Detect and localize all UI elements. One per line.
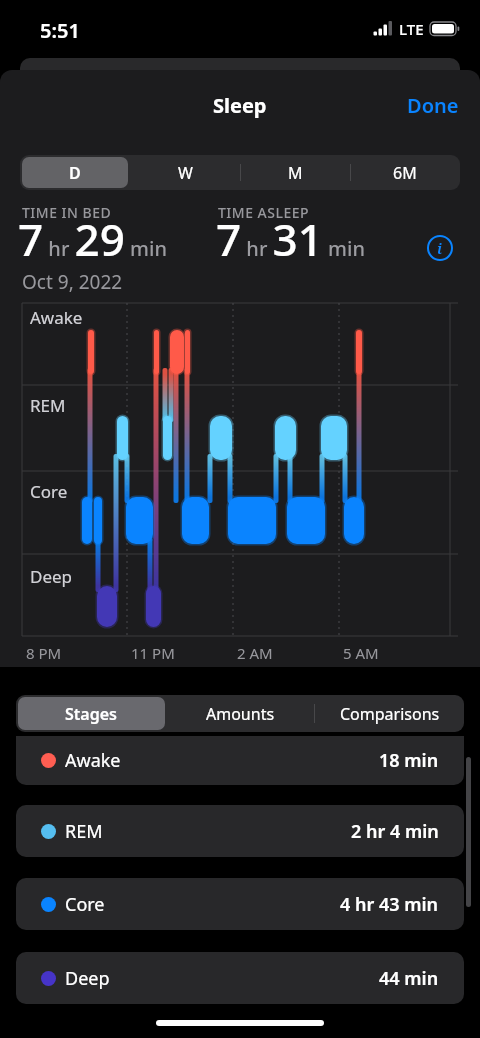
staticText: Awake xyxy=(65,748,121,773)
button[interactable]: Stages xyxy=(16,695,166,732)
button[interactable]: Comparisons xyxy=(315,695,464,732)
staticText: Awake xyxy=(30,306,83,329)
button[interactable] xyxy=(22,157,128,188)
staticText: 7 hr 31 min xyxy=(216,209,365,269)
button[interactable]: W xyxy=(130,155,240,190)
staticText: Core xyxy=(30,480,68,503)
staticText: 6M xyxy=(393,162,417,184)
button[interactable]: Amounts xyxy=(166,695,315,732)
staticText: 11 PM xyxy=(131,643,175,663)
staticText: 5:51 xyxy=(40,17,80,44)
staticText: 44 min xyxy=(379,966,439,991)
button[interactable]: REM xyxy=(16,805,464,857)
staticText: TIME IN BED xyxy=(22,203,112,222)
button[interactable]: D xyxy=(20,155,130,190)
staticText: REM xyxy=(65,819,103,844)
staticText: Done xyxy=(407,92,459,119)
staticText: 8 PM xyxy=(26,643,62,663)
staticText: i xyxy=(437,238,443,258)
staticText: 4 hr 43 min xyxy=(340,892,439,917)
staticText: TIME ASLEEP xyxy=(218,203,310,222)
button[interactable]: 6M xyxy=(350,155,460,190)
staticText: 5 AM xyxy=(343,643,379,663)
staticText: Stages xyxy=(65,703,117,725)
staticText: Amounts xyxy=(206,703,275,725)
button[interactable]: Done xyxy=(403,88,463,123)
staticText: 7 hr 29 min xyxy=(18,209,167,269)
staticText: Sleep xyxy=(213,92,267,119)
button[interactable]: Awake xyxy=(16,736,464,785)
staticText: LTE xyxy=(399,19,424,39)
staticText: Oct 9, 2022 xyxy=(22,269,123,295)
button[interactable]: M xyxy=(240,155,350,190)
button[interactable]: Deep xyxy=(16,952,464,1004)
staticText: 2 hr 4 min xyxy=(351,819,439,844)
staticText: Deep xyxy=(30,565,73,588)
staticText: Deep xyxy=(65,966,110,991)
staticText: Comparisons xyxy=(340,703,440,725)
staticText: D xyxy=(69,162,81,184)
button[interactable]: Core xyxy=(16,878,464,930)
button[interactable]: i xyxy=(427,235,453,261)
button[interactable] xyxy=(18,697,165,730)
staticText: W xyxy=(178,162,193,184)
staticText: 18 min xyxy=(379,748,439,773)
staticText: 2 AM xyxy=(237,643,273,663)
staticText: M xyxy=(288,162,303,184)
staticText: REM xyxy=(30,394,66,417)
staticText: Core xyxy=(65,892,105,917)
